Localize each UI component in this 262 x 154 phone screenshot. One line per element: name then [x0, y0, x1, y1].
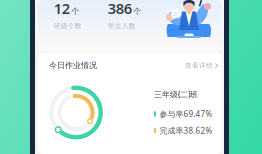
staticText: 参与率69.47% [159, 109, 212, 119]
staticText: 完成率38.62% [159, 125, 212, 136]
staticText: 三年级(二)班 [154, 89, 198, 100]
staticText: 386 [108, 0, 132, 18]
staticText: 个 [133, 6, 141, 16]
staticText: 班级个数 [54, 22, 82, 30]
button[interactable]: 查看详情 [182, 57, 221, 74]
staticText: 查看详情 [185, 61, 213, 70]
staticText: 个 [71, 6, 79, 16]
staticText: 今日作业情况 [49, 60, 97, 70]
staticText: 12 [54, 0, 70, 18]
staticText: 学生人数 [108, 22, 136, 30]
